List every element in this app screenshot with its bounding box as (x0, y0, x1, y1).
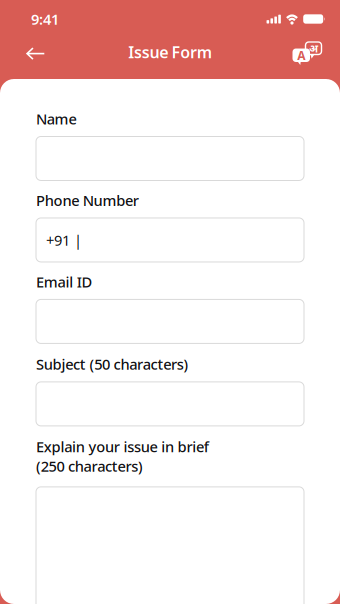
staticText: Issue Form (128, 41, 212, 63)
staticText: अ (309, 41, 318, 55)
staticText: Email ID (36, 272, 93, 291)
staticText: +91 | (46, 230, 82, 250)
button[interactable]: Back (15, 38, 55, 70)
staticText: Explain your issue in brief (250 charact… (36, 437, 209, 476)
staticText: Name (36, 109, 76, 128)
staticText: A (297, 47, 305, 63)
staticText: Subject (50 characters) (36, 354, 189, 374)
staticText: 9:41 (31, 9, 59, 29)
staticText: Phone Number (36, 190, 139, 210)
button[interactable]: Translate (287, 38, 327, 70)
